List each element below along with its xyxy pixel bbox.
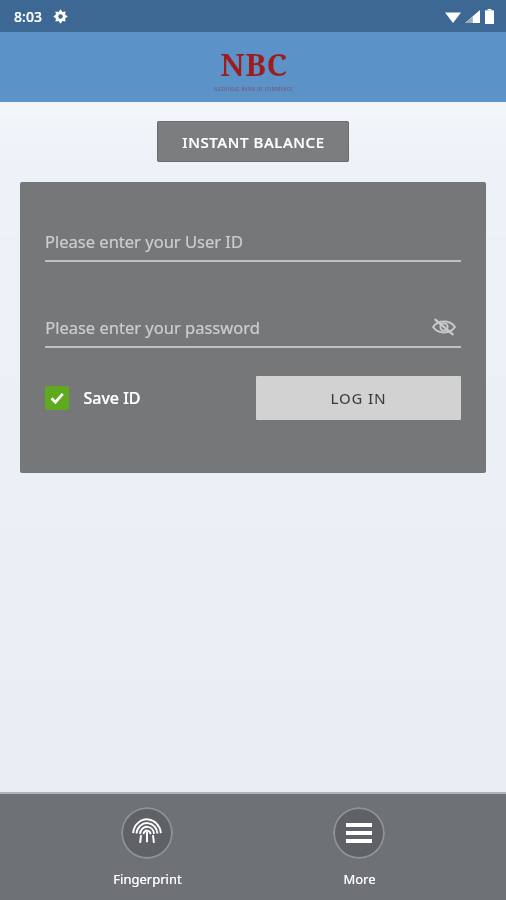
staticText: More	[343, 870, 376, 888]
staticText: Please enter your password	[45, 316, 260, 338]
staticText: NATIONAL BANK OF COMMERCE	[214, 86, 293, 92]
staticText: INSTANT BALANCE	[182, 132, 325, 152]
button[interactable]: LOG IN	[256, 376, 461, 420]
button[interactable]: Show password	[427, 310, 461, 344]
button[interactable]: INSTANT BALANCE	[157, 121, 349, 162]
button[interactable]: Please enter your password	[45, 308, 461, 346]
staticText: NBC	[220, 43, 288, 85]
staticText: 8:03	[14, 7, 42, 26]
staticText: Please enter your User ID	[45, 230, 243, 252]
staticText: LOG IN	[330, 388, 387, 408]
button[interactable]: More options	[294, 803, 424, 892]
staticText: Save ID	[83, 387, 141, 409]
button[interactable]: Fingerprint login	[82, 803, 212, 892]
button[interactable]: Save ID	[45, 386, 141, 410]
staticText: Fingerprint	[113, 870, 182, 888]
button[interactable]: Please enter your User ID	[45, 222, 461, 260]
